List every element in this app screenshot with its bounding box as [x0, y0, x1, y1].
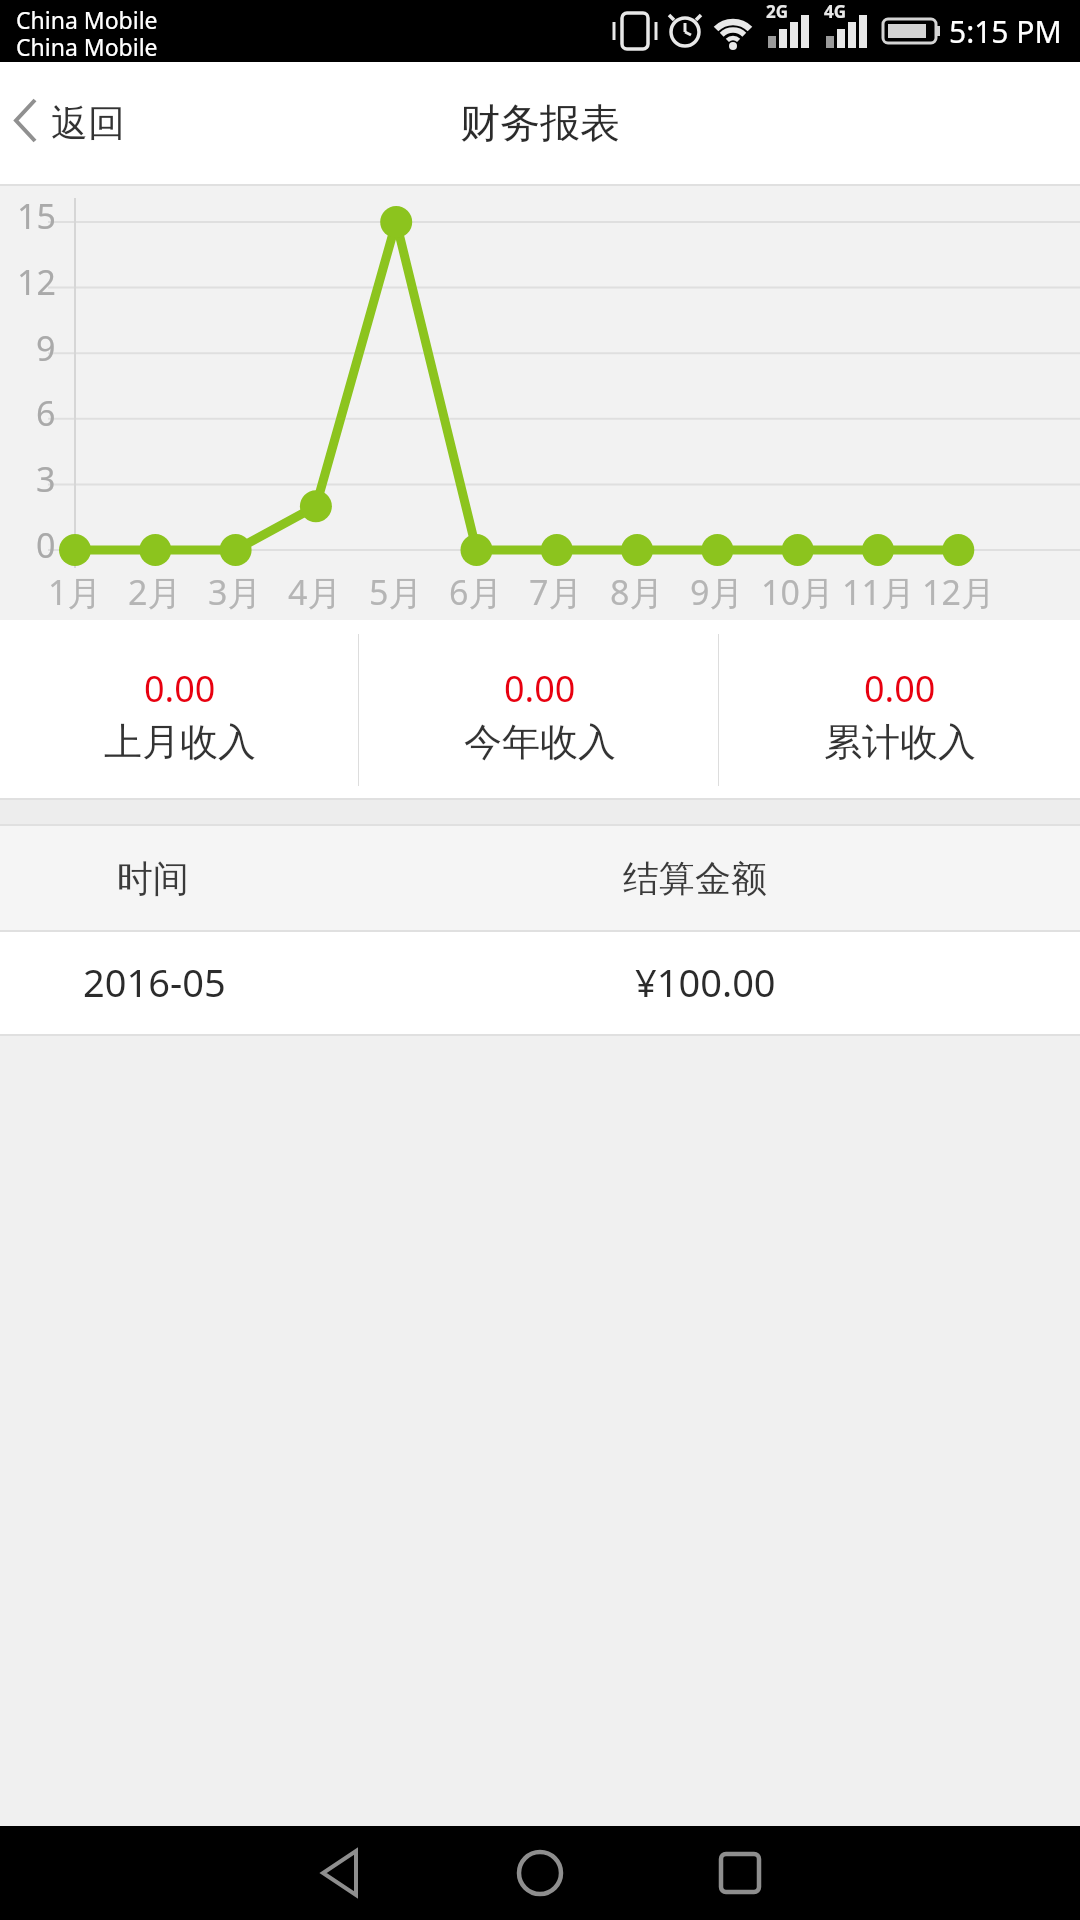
- staticText: 0: [36, 522, 56, 562]
- button[interactable]: [498, 1831, 582, 1915]
- staticText: China Mobile: [16, 4, 158, 32]
- staticText: 返回: [51, 100, 125, 147]
- staticText: 3: [36, 456, 56, 496]
- staticText: 结算金额: [623, 856, 767, 901]
- staticText: 11月: [842, 569, 915, 615]
- staticText: 12: [17, 259, 56, 299]
- staticText: 今年收入: [464, 718, 616, 766]
- staticText: 12月: [922, 569, 995, 615]
- staticText: 2016-05: [83, 956, 226, 1008]
- staticText: 累计收入: [824, 718, 976, 766]
- staticText: 15: [17, 193, 56, 233]
- staticText: 9月: [690, 569, 744, 615]
- staticText: 0.00: [504, 664, 576, 713]
- button[interactable]: 返回: [8, 92, 128, 154]
- staticText: 10月: [761, 569, 834, 615]
- button[interactable]: [300, 1831, 384, 1915]
- staticText: 财务报表: [460, 98, 620, 148]
- button[interactable]: [720, 620, 1080, 798]
- staticText: 7月: [529, 569, 583, 615]
- staticText: 8月: [610, 569, 664, 615]
- staticText: 6: [36, 390, 56, 430]
- staticText: 2G: [766, 0, 789, 18]
- staticText: 0.00: [864, 664, 936, 713]
- staticText: 时间: [117, 856, 189, 901]
- staticText: ¥100.00: [635, 956, 776, 1008]
- button[interactable]: [0, 932, 1080, 1034]
- button[interactable]: [0, 620, 360, 798]
- staticText: 4G: [824, 0, 847, 18]
- staticText: 5月: [369, 569, 423, 615]
- staticText: 3月: [208, 569, 262, 615]
- staticText: 0.00: [144, 664, 216, 713]
- button[interactable]: [698, 1831, 782, 1915]
- staticText: 上月收入: [104, 718, 256, 766]
- staticText: 5:15 PM: [949, 11, 1062, 51]
- staticText: China Mobile: [16, 31, 158, 59]
- staticText: 9: [36, 325, 56, 365]
- staticText: 1月: [48, 569, 102, 615]
- staticText: 4月: [288, 569, 342, 615]
- staticText: 6月: [449, 569, 503, 615]
- staticText: 2月: [128, 569, 182, 615]
- button[interactable]: [360, 620, 720, 798]
